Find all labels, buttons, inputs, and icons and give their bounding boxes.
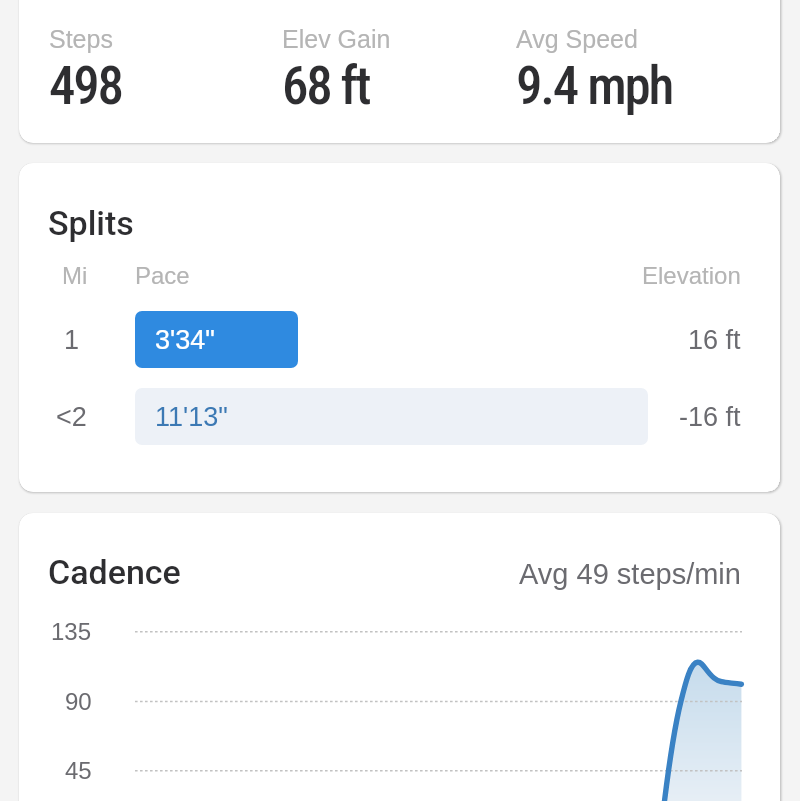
button[interactable]: 1 bbox=[19, 311, 780, 368]
staticText: 3'34" bbox=[155, 325, 215, 355]
staticText: 11'13" bbox=[155, 402, 228, 432]
staticText: Pace bbox=[135, 262, 190, 289]
staticText: Cadence bbox=[48, 552, 181, 592]
staticText: Elev Gain bbox=[282, 25, 391, 53]
staticText: 45 bbox=[65, 757, 92, 784]
staticText: 135 bbox=[51, 618, 92, 645]
staticText: 9.4 mph bbox=[516, 55, 673, 117]
staticText: Mi bbox=[62, 262, 88, 289]
staticText: Avg Speed bbox=[516, 25, 638, 53]
staticText: -16 ft bbox=[679, 402, 741, 432]
staticText: 68 ft bbox=[282, 55, 370, 117]
button[interactable]: <2 bbox=[19, 388, 780, 445]
staticText: 90 bbox=[65, 688, 92, 715]
staticText: 1 bbox=[64, 325, 80, 355]
staticText: Steps bbox=[49, 25, 113, 53]
staticText: Avg 49 steps/min bbox=[519, 558, 741, 590]
staticText: 498 bbox=[49, 55, 122, 117]
staticText: <2 bbox=[56, 402, 87, 432]
staticText: Splits bbox=[48, 203, 134, 243]
staticText: 16 ft bbox=[688, 325, 741, 355]
staticText: Elevation bbox=[642, 262, 741, 289]
